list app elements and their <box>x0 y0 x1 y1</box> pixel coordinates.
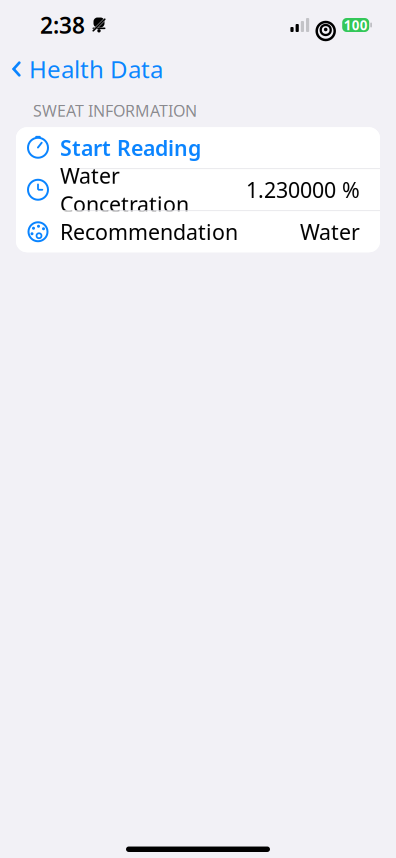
staticText: 100 <box>344 16 368 34</box>
button[interactable]: Health Data <box>0 47 163 91</box>
staticText: Start Reading <box>60 134 201 162</box>
staticText: SWEAT INFORMATION <box>33 100 197 121</box>
staticText: Water <box>300 218 360 246</box>
staticText: Water Concetration <box>60 161 189 218</box>
staticText: Health Data <box>29 53 163 85</box>
button[interactable]: Start Reading <box>16 127 380 168</box>
staticText: 2:38 <box>40 10 85 40</box>
staticText: 1.230000 % <box>246 176 360 204</box>
staticText: Recommendation <box>60 218 238 246</box>
